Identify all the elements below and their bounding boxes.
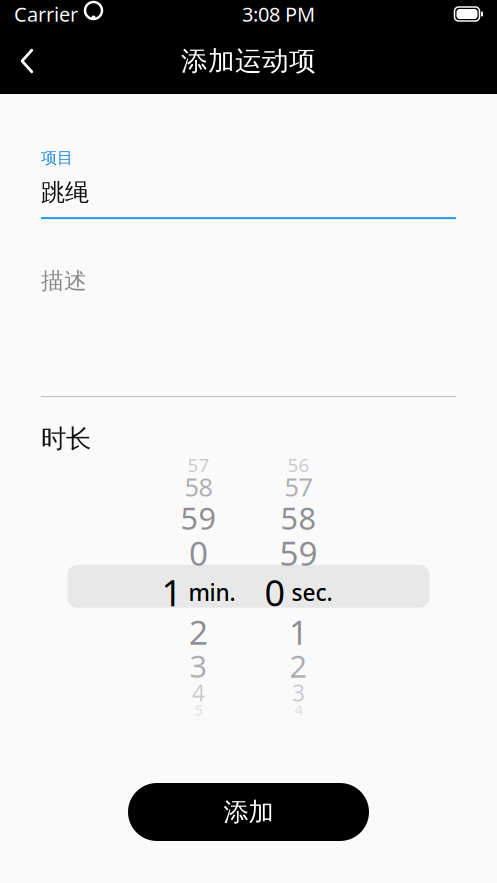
staticText: 59	[180, 497, 216, 538]
staticText: Carrier	[14, 1, 78, 27]
button[interactable]: 添加	[128, 783, 369, 841]
staticText: 2	[189, 610, 208, 654]
staticText: 添加运动项	[181, 45, 316, 77]
staticText: 59	[279, 531, 317, 575]
staticText: 2	[289, 645, 307, 686]
staticText: 57	[284, 470, 312, 503]
staticText: 56	[287, 452, 309, 477]
staticText: 跳绳	[41, 178, 89, 207]
staticText: 时长	[41, 423, 91, 454]
staticText: 58	[280, 497, 316, 538]
staticText: 1	[161, 568, 182, 616]
staticText: 1	[289, 610, 308, 654]
staticText: min.	[188, 577, 235, 607]
staticText: 57	[187, 452, 209, 477]
button[interactable]: Back	[0, 28, 54, 94]
staticText: 3	[189, 645, 207, 686]
staticText: 3	[292, 678, 305, 708]
staticText: 5	[194, 700, 202, 719]
staticText: 4	[294, 700, 302, 719]
staticText: 58	[184, 470, 212, 503]
staticText: 3:08 PM	[242, 1, 315, 27]
staticText: 0	[264, 568, 285, 616]
staticText: 添加	[223, 796, 273, 827]
staticText: 项目	[41, 148, 73, 168]
staticText: sec.	[291, 577, 332, 607]
staticText: 描述	[41, 267, 87, 295]
staticText: 4	[192, 678, 205, 708]
staticText: 0	[189, 531, 208, 575]
